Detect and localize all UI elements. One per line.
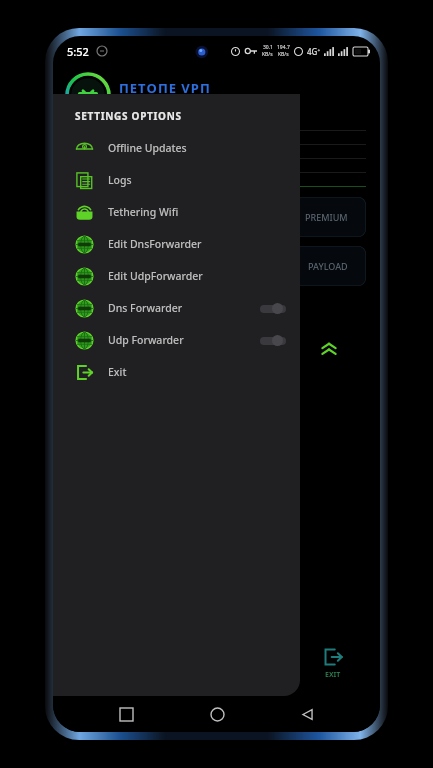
staticText: SETTINGS OPTIONS <box>75 109 182 123</box>
staticText: Edit UdpForwarder <box>108 269 203 283</box>
button[interactable]: Back <box>290 697 324 731</box>
staticText: 5:52 <box>67 44 89 59</box>
button[interactable]: Exit <box>53 361 300 383</box>
staticText: 4G⁺ <box>307 46 321 57</box>
button[interactable]: Dns Forwarder <box>53 297 300 319</box>
staticText: KB/s <box>262 51 273 58</box>
staticText: PAYLOAD <box>308 260 348 272</box>
staticText: SERVERS <box>234 304 272 316</box>
button[interactable]: Expand <box>318 342 340 364</box>
staticText: Offline Updates <box>108 141 187 155</box>
staticText: Udp Forwarder <box>108 333 184 347</box>
staticText: 30.1 <box>263 44 273 51</box>
staticText: Edit DnsForwarder <box>108 237 202 251</box>
staticText: KB/s <box>278 51 289 58</box>
staticText: Exit <box>108 365 127 379</box>
button[interactable]: Edit UdpForwarder <box>53 265 300 287</box>
button[interactable]: Recents <box>109 697 143 731</box>
button[interactable]: Logs <box>53 169 300 191</box>
button[interactable]: SERVERS <box>67 298 282 322</box>
button[interactable] <box>260 335 286 346</box>
staticText: Dns Forwarder <box>108 301 183 315</box>
button[interactable]: Udp Forwarder <box>53 329 300 351</box>
staticText: 194.7 <box>277 44 290 51</box>
staticText: EXIT <box>325 670 341 680</box>
button[interactable]: EXIT <box>322 646 344 680</box>
button[interactable]: Tethering Wifi <box>53 201 300 223</box>
button[interactable]: Home <box>200 697 234 731</box>
button[interactable] <box>260 303 286 314</box>
button[interactable]: Offline Updates <box>53 137 300 159</box>
button[interactable]: PAYLOAD <box>67 246 366 286</box>
staticText: Tethering Wifi <box>108 205 179 219</box>
staticText: PREMIUM <box>305 211 348 223</box>
staticText: Logs <box>108 173 132 187</box>
staticText: ΠΕΤOΠΕ VPΠ <box>119 79 211 97</box>
button[interactable]: Edit DnsForwarder <box>53 233 300 255</box>
button[interactable]: PREMIUM <box>67 197 366 237</box>
